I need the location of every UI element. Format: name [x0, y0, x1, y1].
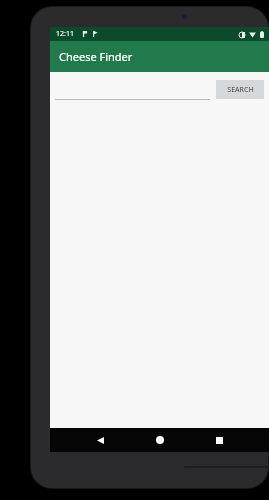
- staticText: Cheese Finder: [59, 49, 133, 64]
- button[interactable]: [55, 78, 210, 100]
- button[interactable]: SEARCH: [216, 80, 264, 99]
- button[interactable]: Back: [90, 430, 110, 450]
- staticText: 12:11: [56, 29, 74, 39]
- button[interactable]: Home: [150, 430, 170, 450]
- staticText: SEARCH: [227, 85, 254, 95]
- button[interactable]: Recent apps: [209, 430, 229, 450]
